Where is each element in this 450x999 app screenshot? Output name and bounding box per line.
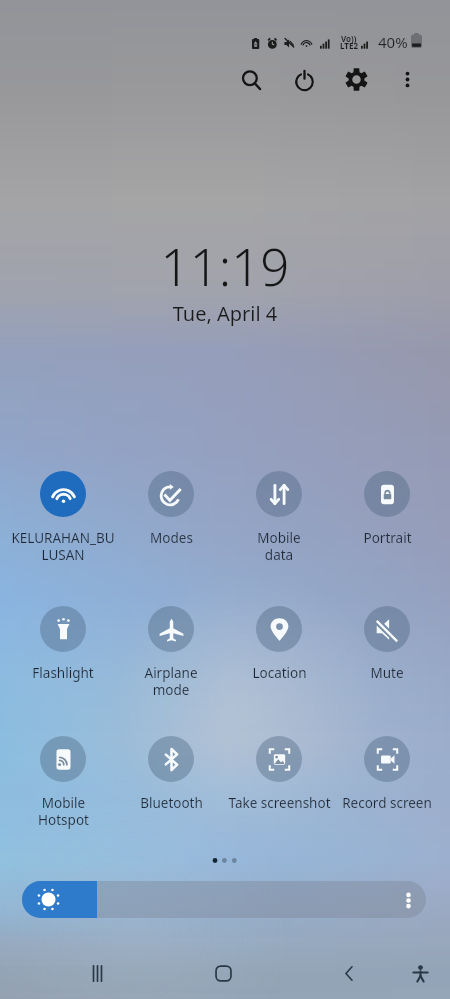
button[interactable]: KELURAHAN_BU LUSAN bbox=[9, 471, 117, 564]
staticText: 11:19 bbox=[0, 231, 450, 300]
staticText: Vo)) bbox=[341, 33, 357, 44]
button[interactable]: Portrait bbox=[333, 471, 441, 547]
staticText: Mobile Hotspot bbox=[38, 794, 89, 829]
staticText: LTE2 bbox=[340, 40, 358, 51]
button[interactable]: Recents bbox=[75, 951, 119, 995]
staticText: Portrait bbox=[363, 529, 412, 547]
button[interactable]: Brightness options bbox=[397, 889, 419, 911]
button[interactable]: Airplane mode bbox=[117, 606, 225, 699]
button[interactable]: Take screenshot bbox=[225, 736, 333, 812]
button[interactable]: Settings bbox=[337, 60, 375, 98]
button[interactable]: Accessibility bbox=[398, 951, 442, 995]
staticText: Record screen bbox=[342, 794, 432, 812]
staticText: Flashlight bbox=[32, 664, 94, 682]
staticText: Tue, April 4 bbox=[0, 300, 450, 327]
button[interactable]: Search bbox=[232, 61, 270, 99]
staticText: 40% bbox=[378, 32, 408, 52]
staticText: Mute bbox=[370, 664, 404, 682]
button[interactable]: Home bbox=[201, 951, 245, 995]
staticText: Bluetooth bbox=[140, 794, 203, 812]
button[interactable]: Brightness options bbox=[22, 881, 426, 918]
staticText: Airplane mode bbox=[144, 664, 198, 699]
staticText: Modes bbox=[150, 529, 193, 547]
button[interactable]: Bluetooth bbox=[117, 736, 225, 812]
staticText: Mobile data bbox=[257, 529, 301, 564]
button[interactable]: Flashlight bbox=[9, 606, 117, 682]
button[interactable]: Mobile data bbox=[225, 471, 333, 564]
staticText: Take screenshot bbox=[228, 794, 331, 812]
button[interactable]: Record screen bbox=[333, 736, 441, 812]
staticText: Location bbox=[252, 664, 307, 682]
staticText: KELURAHAN_BU LUSAN bbox=[11, 529, 115, 564]
button[interactable]: Mobile Hotspot bbox=[9, 736, 117, 829]
button[interactable]: More options bbox=[388, 60, 426, 98]
button[interactable]: Location bbox=[225, 606, 333, 682]
button[interactable]: Power bbox=[285, 61, 323, 99]
button[interactable]: Mute bbox=[333, 606, 441, 682]
button[interactable]: Modes bbox=[117, 471, 225, 547]
button[interactable]: Back bbox=[327, 951, 371, 995]
